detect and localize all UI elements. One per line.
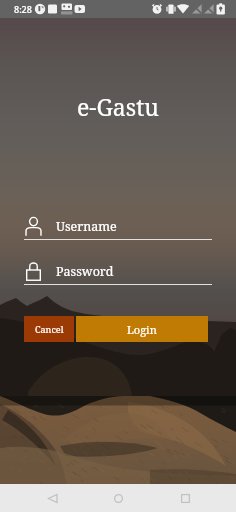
staticText: Username (56, 218, 117, 235)
button[interactable]: Password (0, 262, 236, 294)
staticText: Cancel (35, 323, 64, 335)
staticText: e-Gastu (77, 91, 159, 122)
staticText: Login (127, 322, 157, 337)
staticText: Password (56, 263, 114, 280)
button[interactable]: Recents (170, 484, 200, 512)
button[interactable]: Cancel (24, 316, 74, 342)
staticText: 8:28 (14, 3, 32, 15)
button[interactable]: Home (103, 484, 133, 512)
button[interactable]: Back (37, 484, 67, 512)
button[interactable]: Login (76, 316, 208, 342)
button[interactable]: Username (0, 217, 236, 249)
